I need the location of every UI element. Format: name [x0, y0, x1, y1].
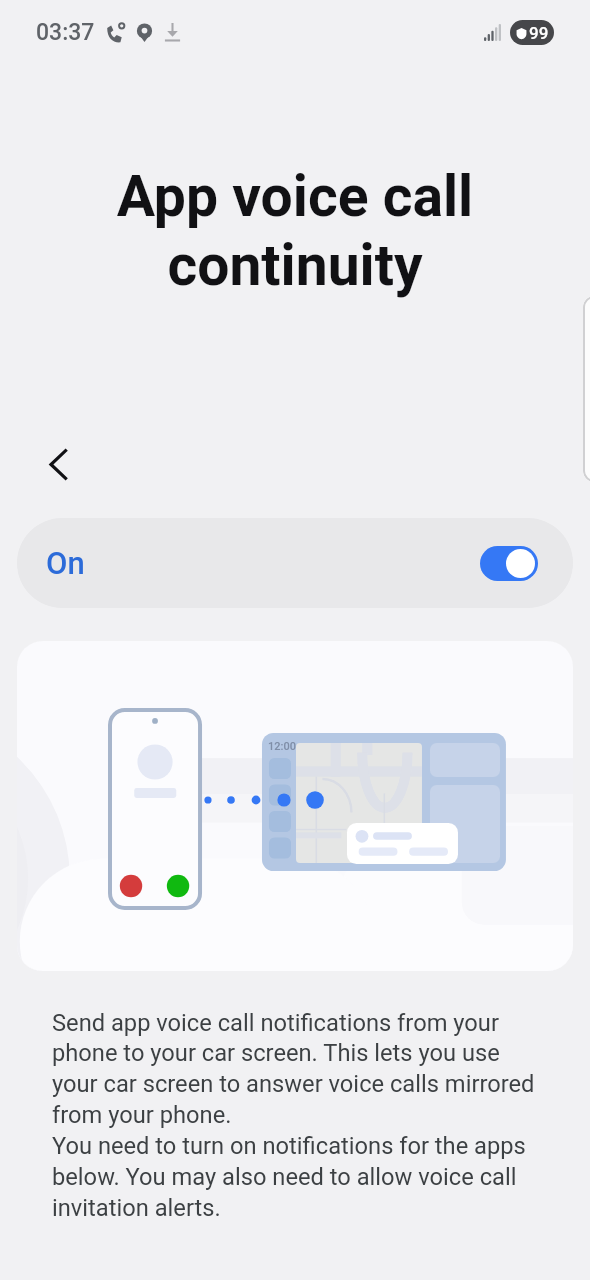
button[interactable]: Back — [29, 436, 85, 492]
staticText: Send app voice call notifications from y… — [52, 1009, 547, 1222]
staticText: On — [46, 545, 85, 581]
button[interactable]: On — [17, 518, 573, 608]
staticText: 99 — [529, 23, 549, 43]
staticText: App voice call continuity — [52, 163, 538, 299]
staticText: 12:00 — [268, 740, 296, 753]
staticText: 03:37 — [36, 19, 95, 46]
